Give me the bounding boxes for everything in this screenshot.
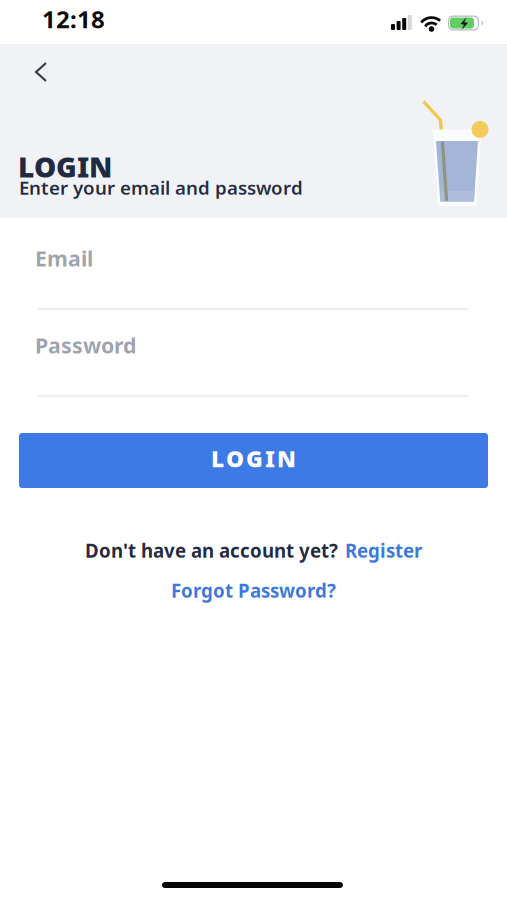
staticText: LOGIN xyxy=(18,148,112,185)
button[interactable]: Email xyxy=(35,244,465,310)
staticText: Register xyxy=(345,538,422,563)
button[interactable]: Register xyxy=(345,538,422,563)
staticText: Don't have an account yet? xyxy=(85,538,338,563)
staticText: Forgot Password? xyxy=(171,578,336,603)
button[interactable]: Back xyxy=(24,54,60,90)
button[interactable]: Forgot Password? xyxy=(171,578,336,603)
staticText: 12:18 xyxy=(42,3,105,35)
staticText: L O G I N xyxy=(211,443,296,473)
staticText: Enter your email and password xyxy=(19,175,303,200)
staticText: Email xyxy=(35,244,93,272)
button[interactable]: Password xyxy=(35,331,465,397)
button[interactable]: L O G I N xyxy=(19,433,488,488)
staticText: Password xyxy=(35,331,136,359)
